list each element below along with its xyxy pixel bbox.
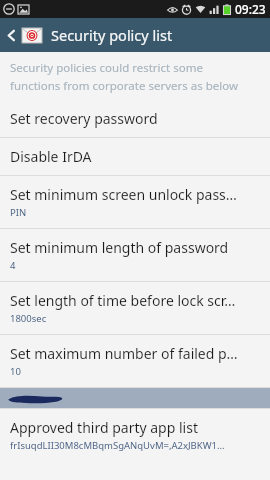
staticText: 1800sec — [10, 312, 47, 325]
staticText: 09:23 — [235, 1, 266, 17]
button[interactable]: Set recovery password — [0, 100, 270, 137]
staticText: 10 — [10, 365, 21, 378]
staticText: Set maximum number of failed p… — [10, 344, 238, 363]
button[interactable]: Set length of time before lock scr… — [0, 282, 270, 334]
staticText: 4 — [10, 259, 16, 272]
staticText: Security policies could restrict some — [10, 60, 203, 76]
staticText: Set recovery password — [10, 109, 158, 128]
button[interactable]: Set minimum length of password — [0, 229, 270, 281]
staticText: Set minimum screen unlock pass… — [10, 185, 237, 204]
staticText: frIsuqdLII30M8cMBqmSgANqUvM=,A2xJBKW1… — [10, 439, 225, 452]
button[interactable]: Disable IrDA — [0, 138, 270, 175]
button[interactable] — [0, 388, 270, 408]
staticText: Security policy list — [51, 25, 173, 45]
staticText: Set length of time before lock scr… — [10, 291, 236, 310]
staticText: functions from corporate servers as belo… — [10, 78, 238, 94]
button[interactable]: Set minimum screen unlock pass… — [0, 176, 270, 228]
button[interactable]: Set maximum number of failed p… — [0, 335, 270, 387]
staticText: PIN — [10, 206, 27, 219]
staticText: Set minimum length of password — [10, 238, 229, 257]
button[interactable]: Approved third party app list — [0, 409, 270, 461]
button[interactable]: Back — [0, 18, 22, 52]
staticText: Approved third party app list — [10, 418, 198, 437]
staticText: Disable IrDA — [10, 147, 92, 166]
